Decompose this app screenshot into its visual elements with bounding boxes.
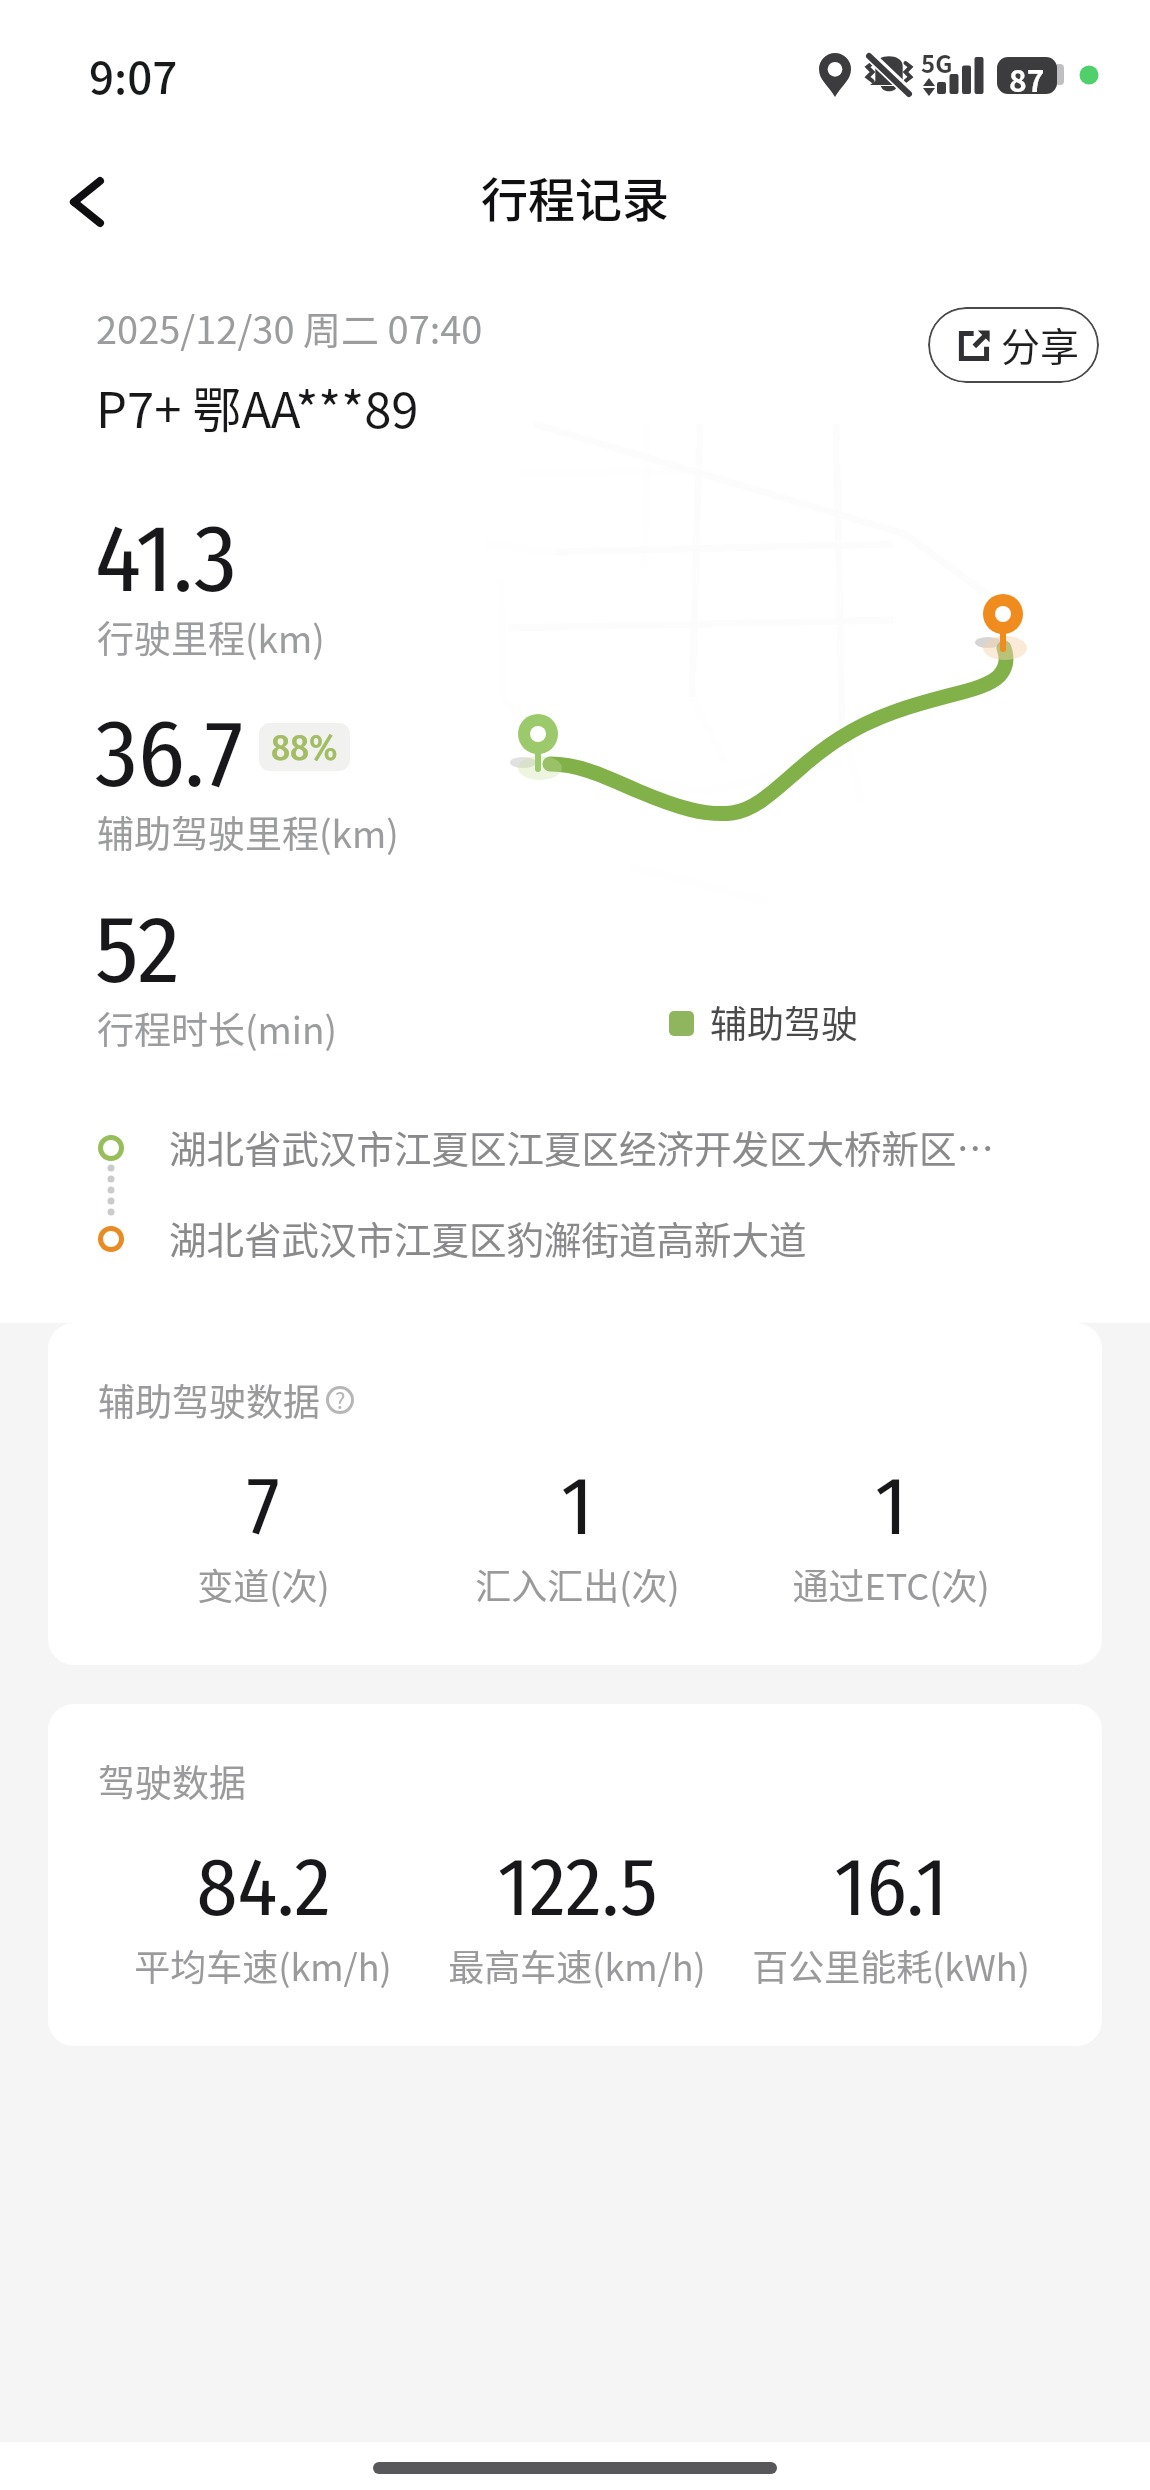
staticText: 行驶里程(km) — [97, 610, 325, 664]
staticText: 平均车速(km/h) — [134, 1939, 392, 1991]
staticText: 5G — [921, 45, 953, 80]
staticText: 122.5 — [497, 1838, 658, 1936]
button[interactable]: 湖北省武汉市江夏区豹澥街道高新大道 — [169, 1204, 807, 1270]
staticText: 辅助驾驶里程(km) — [97, 805, 399, 859]
staticText: 36.7 — [95, 697, 244, 811]
button[interactable]: 湖北省武汉市江夏区江夏区经济开发区大桥新区… — [169, 1113, 994, 1179]
staticText: 变道(次) — [197, 1558, 330, 1610]
button[interactable] — [90, 901, 430, 1061]
staticText: 最高车速(km/h) — [448, 1939, 706, 1991]
staticText: 通过ETC(次) — [792, 1558, 990, 1610]
button[interactable]: 84.2 — [106, 1838, 420, 1991]
staticText: 2025/12/30 周二 07:40 — [96, 300, 483, 355]
staticText: 驾驶数据 — [98, 1754, 246, 1808]
button[interactable] — [90, 705, 430, 865]
staticText: 9:07 — [89, 43, 178, 107]
button[interactable]: 122.5 — [420, 1838, 734, 1991]
button[interactable]: 16.1 — [734, 1838, 1048, 1991]
staticText: 辅助驾驶 — [710, 995, 858, 1049]
staticText: 7 — [246, 1457, 280, 1555]
staticText: 1 — [875, 1457, 907, 1555]
staticText: 84.2 — [196, 1838, 331, 1936]
button[interactable]: Back — [42, 157, 132, 247]
staticText: 行程记录 — [481, 162, 669, 230]
staticText: 百公里能耗(kWh) — [752, 1939, 1030, 1991]
button[interactable]: Help — [319, 1379, 361, 1421]
staticText: 16.1 — [834, 1838, 948, 1936]
staticText: ? — [335, 1383, 346, 1415]
button[interactable]: 1 — [734, 1457, 1048, 1610]
staticText: 88% — [271, 725, 338, 769]
button[interactable]: 分享 — [928, 307, 1099, 383]
staticText: 87 — [1009, 57, 1045, 94]
staticText: 1 — [561, 1457, 593, 1555]
staticText: 辅助驾驶数据 — [98, 1373, 320, 1427]
staticText: 分享 — [1001, 316, 1080, 372]
staticText: 湖北省武汉市江夏区江夏区经济开发区大桥新区… — [169, 1119, 994, 1173]
button[interactable]: 1 — [420, 1457, 734, 1610]
staticText: 湖北省武汉市江夏区豹澥街道高新大道 — [169, 1210, 807, 1264]
staticText: 行程时长(min) — [97, 1001, 338, 1055]
button[interactable] — [90, 510, 430, 670]
staticText: 汇入汇出(次) — [475, 1558, 680, 1610]
staticText: 41.3 — [95, 502, 237, 616]
staticText: 52 — [95, 893, 180, 1007]
button[interactable]: 7 — [106, 1457, 420, 1610]
staticText: P7+ 鄂AA***89 — [96, 371, 419, 442]
